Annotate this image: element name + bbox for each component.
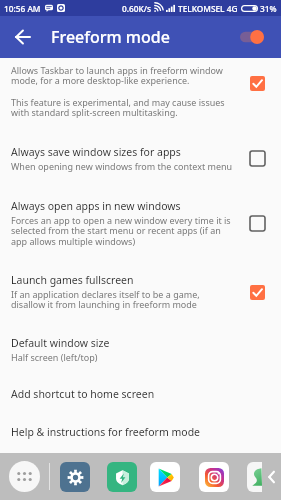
staticText: Freeform mode: [51, 26, 170, 48]
staticText: Half screen (left/top): [11, 351, 98, 363]
staticText: Add shortcut to home screen: [11, 387, 155, 401]
staticText: Forces an app to open a new window every…: [11, 214, 235, 248]
staticText: Default window size: [11, 336, 110, 350]
staticText: Help & instructions for freeform mode: [11, 425, 201, 439]
button[interactable]: Instagram: [199, 462, 229, 492]
staticText: TELKOMSEL 4G: [178, 3, 238, 14]
button[interactable]: All apps: [9, 461, 40, 492]
button[interactable]: Allows Taskbar to launch apps in freefor…: [0, 64, 281, 119]
staticText: Always save window sizes for apps: [11, 145, 181, 159]
staticText: If an application declares itself to be …: [11, 288, 235, 311]
button[interactable]: Toggle freeform mode: [232, 16, 272, 58]
button[interactable]: Collapse taskbar: [264, 462, 279, 491]
button[interactable]: Launch games fullscreen: [0, 273, 281, 311]
staticText: 31%: [260, 3, 277, 14]
button[interactable]: Play Store: [150, 462, 180, 492]
button[interactable]: Add shortcut to home screen: [0, 387, 281, 401]
staticText: 0.60K/s: [122, 3, 151, 14]
staticText: Allows Taskbar to launch apps in freefor…: [11, 64, 235, 87]
staticText: When opening new windows from the contex…: [11, 160, 233, 172]
button[interactable]: Help & instructions for freeform mode: [0, 425, 281, 439]
staticText: Always open apps in new windows: [11, 199, 181, 213]
button[interactable]: Default window size: [0, 336, 281, 363]
button[interactable]: Settings: [60, 462, 90, 492]
staticText: Launch games fullscreen: [11, 273, 134, 287]
button[interactable]: Always open apps in new windows: [0, 199, 281, 248]
button[interactable]: Always save window sizes for apps: [0, 145, 281, 172]
staticText: 10:56 AM: [4, 3, 41, 14]
staticText: This feature is experimental, and may ca…: [11, 96, 235, 119]
button[interactable]: Back: [8, 16, 37, 58]
button[interactable]: Security: [107, 462, 137, 492]
button[interactable]: WhatsApp: [247, 462, 262, 492]
